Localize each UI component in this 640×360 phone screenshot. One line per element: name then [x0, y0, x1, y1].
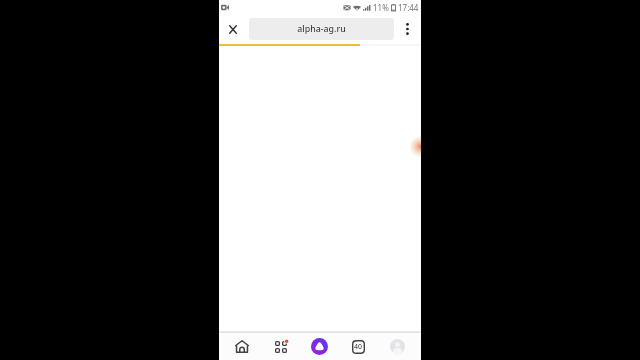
staticText: alpha-ag.ru — [297, 23, 346, 35]
button[interactable]: Tabs, 40 open — [339, 333, 378, 360]
staticText: 11% — [373, 2, 389, 13]
button[interactable]: More options — [394, 16, 420, 42]
staticText: 40 — [354, 342, 363, 352]
button[interactable]: Profile — [378, 333, 417, 360]
button[interactable]: Close — [220, 16, 246, 42]
button[interactable]: Home — [223, 333, 261, 360]
button[interactable]: Apps — [261, 333, 300, 360]
button[interactable]: Assistant — [300, 333, 339, 360]
staticText: 17:44 — [398, 2, 419, 13]
button[interactable]: alpha-ag.ru — [249, 18, 394, 40]
